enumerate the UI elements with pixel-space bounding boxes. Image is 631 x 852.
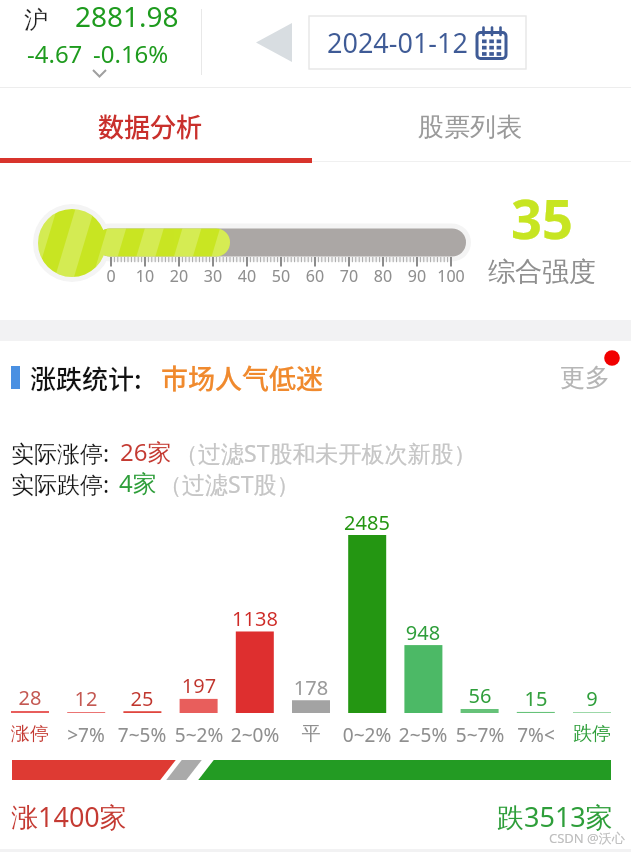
staticText: 跌停: [562, 722, 622, 746]
staticText: 市场人气低迷: [161, 358, 323, 397]
staticText: 80: [359, 265, 407, 287]
staticText: 178: [281, 674, 341, 701]
button[interactable]: Previous day: [250, 18, 298, 66]
staticText: 沪: [24, 5, 48, 35]
staticText: 涨停: [0, 722, 60, 746]
staticText: 56: [450, 682, 510, 709]
staticText: 2024-01-12: [327, 24, 468, 61]
staticText: 0~2%: [337, 722, 397, 748]
staticText: 平: [281, 722, 341, 746]
button[interactable]: 沪: [0, 0, 200, 85]
staticText: 26家: [120, 435, 172, 468]
staticText: 实际跌停:: [11, 468, 110, 499]
staticText: 90: [393, 265, 441, 287]
staticText: 0: [87, 265, 135, 287]
other: New updates: [604, 350, 621, 367]
staticText: 10: [121, 265, 169, 287]
staticText: CSDN @沃心: [549, 829, 625, 847]
staticText: 15: [506, 685, 566, 712]
staticText: >7%: [56, 722, 116, 748]
staticText: -0.16%: [93, 37, 169, 70]
button[interactable]: 股票列表: [315, 88, 631, 160]
staticText: 40: [223, 265, 271, 287]
staticText: （过滤ST股）: [159, 468, 300, 499]
staticText: 70: [325, 265, 373, 287]
staticText: 28: [0, 684, 60, 711]
staticText: 35: [511, 181, 573, 255]
staticText: 1138: [225, 605, 285, 632]
staticText: 2~5%: [393, 722, 453, 748]
staticText: 7%<: [506, 722, 566, 748]
button[interactable]: 2024-01-12: [309, 16, 526, 69]
staticText: 948: [393, 619, 453, 646]
staticText: 30: [189, 265, 237, 287]
staticText: 60: [291, 265, 339, 287]
staticText: 实际涨停:: [11, 437, 110, 468]
staticText: 197: [169, 672, 229, 699]
staticText: 5~2%: [169, 722, 229, 748]
staticText: 涨跌统计:: [30, 359, 142, 397]
staticText: 12: [56, 685, 116, 712]
staticText: -4.67: [27, 37, 83, 70]
staticText: 100: [427, 265, 475, 287]
staticText: （过滤ST股和未开板次新股）: [175, 437, 477, 468]
staticText: 9: [562, 685, 622, 712]
staticText: 数据分析: [98, 107, 203, 145]
staticText: 更多: [560, 362, 610, 393]
staticText: 20: [155, 265, 203, 287]
button[interactable]: 涨跌统计:: [11, 358, 323, 397]
staticText: 5~7%: [450, 722, 510, 748]
staticText: 综合强度: [488, 255, 596, 289]
staticText: 25: [112, 685, 172, 712]
staticText: 跌3513家: [497, 798, 613, 835]
staticText: 2~0%: [225, 722, 285, 748]
button[interactable]: 数据分析: [0, 88, 315, 160]
staticText: 涨1400家: [11, 798, 127, 835]
staticText: 股票列表: [418, 111, 522, 144]
staticText: 2485: [337, 509, 397, 536]
staticText: 2881.98: [75, 0, 179, 35]
button[interactable]: 更多: [560, 362, 610, 393]
staticText: 4家: [119, 466, 157, 499]
staticText: 7~5%: [112, 722, 172, 748]
staticText: 50: [257, 265, 305, 287]
